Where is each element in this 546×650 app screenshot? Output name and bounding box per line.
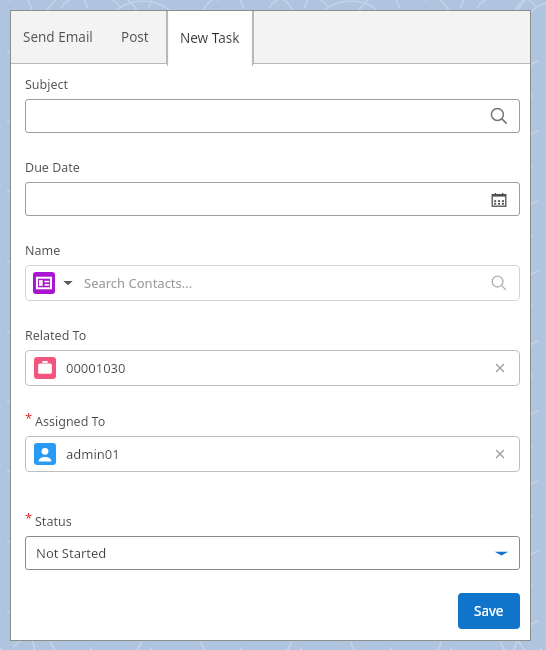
staticText: Due Date [25, 159, 80, 176]
staticText: Status [35, 513, 72, 530]
button[interactable]: Clear 00001030 [491, 359, 509, 377]
staticText: Send Email [23, 28, 93, 46]
button[interactable]: New Task [167, 10, 253, 66]
button[interactable]: Post [105, 10, 165, 64]
other: Open status list [495, 547, 508, 560]
other: Change object type [61, 276, 75, 290]
button[interactable]: admin01 [25, 436, 520, 472]
button[interactable]: Save [458, 593, 520, 629]
staticText: admin01 [66, 445, 120, 463]
other: Pick date [489, 189, 509, 209]
button[interactable]: Send Email [10, 10, 105, 64]
staticText: Search Contacts... [84, 274, 193, 292]
button[interactable]: Change object type [25, 265, 520, 301]
button[interactable]: Search [25, 99, 520, 133]
staticText: Post [121, 28, 149, 46]
staticText: Name [25, 242, 61, 259]
staticText: Related To [25, 327, 87, 344]
staticText: New Task [180, 29, 240, 47]
staticText: Subject [25, 76, 69, 93]
button[interactable]: Pick date [25, 182, 520, 216]
staticText: Assigned To [35, 413, 106, 430]
button[interactable]: 00001030 [25, 350, 520, 386]
button[interactable]: Clear admin01 [491, 445, 509, 463]
staticText: 00001030 [66, 359, 126, 377]
staticText: * [25, 509, 33, 527]
staticText: Not Started [36, 544, 107, 562]
other: Search [489, 106, 509, 126]
staticText: Save [474, 602, 504, 620]
button[interactable]: Not Started [25, 536, 520, 570]
staticText: * [25, 409, 33, 427]
